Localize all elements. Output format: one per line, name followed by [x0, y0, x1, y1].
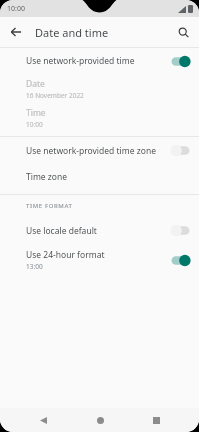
staticText: 10:00 — [7, 4, 25, 14]
staticText: Use network-provided time zone — [26, 145, 169, 157]
staticText: 13:00 — [26, 262, 43, 271]
button[interactable]: Time — [0, 103, 199, 132]
button[interactable]: Use 24-hour format — [0, 244, 199, 276]
button[interactable]: Use network-provided time zone — [0, 137, 199, 164]
staticText: Use locale default — [26, 225, 169, 237]
button[interactable]: Recents — [142, 408, 170, 432]
button[interactable]: Back — [29, 408, 57, 432]
staticText: Date — [26, 78, 45, 90]
staticText: Date and time — [35, 25, 109, 40]
button[interactable]: Search — [172, 21, 194, 43]
button[interactable]: Use network-provided time — [0, 48, 199, 74]
staticText: 16 November 2022 — [26, 91, 84, 100]
button[interactable]: Use locale default — [0, 217, 199, 244]
staticText: Time — [26, 107, 46, 119]
staticText: Time zone — [26, 171, 68, 183]
staticText: 10:00 — [26, 120, 43, 129]
button[interactable]: Back — [5, 21, 27, 43]
staticText: Use network-provided time — [26, 55, 169, 67]
staticText: TIME FORMAT — [26, 202, 73, 210]
staticText: Use 24-hour format — [26, 249, 105, 261]
button[interactable]: Date — [0, 74, 199, 103]
button[interactable]: Time zone — [0, 164, 199, 190]
button[interactable]: Home — [86, 408, 114, 432]
